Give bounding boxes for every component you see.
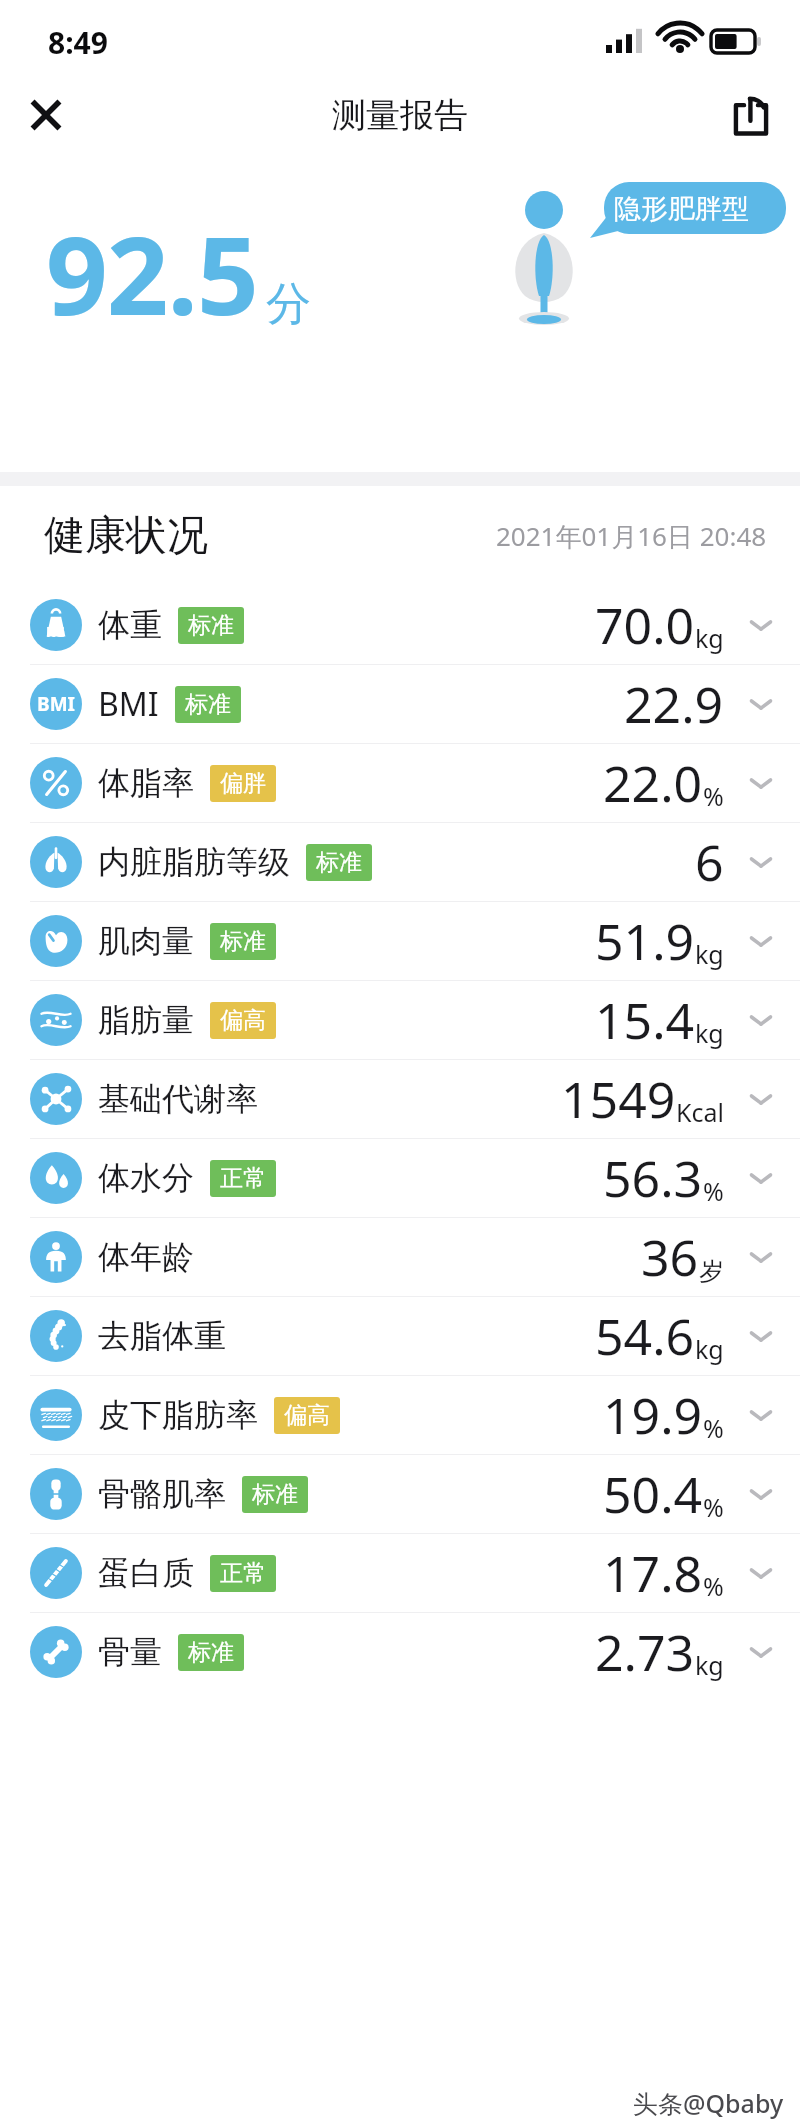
staticText: Kcal	[676, 1095, 724, 1129]
staticText: 22.9	[624, 670, 724, 738]
staticText: 体脂率	[98, 763, 194, 803]
staticText: 偏胖	[220, 769, 266, 798]
staticText: 皮下脂肪率	[98, 1395, 258, 1435]
staticText: 分	[266, 276, 311, 333]
staticText: 健康状况	[44, 510, 208, 562]
staticText: 偏高	[284, 1401, 330, 1430]
staticText: %	[703, 1174, 724, 1208]
staticText: 蛋白质	[98, 1553, 194, 1593]
button[interactable]: 蛋白质	[0, 1534, 800, 1612]
staticText: 基础代谢率	[98, 1079, 258, 1119]
staticText: 51.9	[595, 907, 695, 975]
staticText: 50.4	[603, 1460, 703, 1528]
button[interactable]: 内脏脂肪等级	[0, 823, 800, 901]
staticText: 体年龄	[98, 1237, 194, 1277]
staticText: 2021年01月16日 20:48	[496, 518, 767, 554]
staticText: 标准	[185, 690, 231, 719]
staticText: 脂肪量	[98, 1000, 194, 1040]
button[interactable]: KG	[0, 586, 800, 664]
button[interactable]: 体水分	[0, 1139, 800, 1217]
staticText: 骨量	[98, 1632, 162, 1672]
staticText: kg	[695, 1016, 724, 1050]
staticText: 19.9	[603, 1381, 703, 1449]
staticText: kg	[695, 621, 724, 655]
staticText: 头条@Qbaby	[633, 2086, 784, 2120]
staticText: BMI	[98, 682, 159, 726]
staticText: %	[703, 1569, 724, 1603]
staticText: kg	[695, 937, 724, 971]
staticText: 17.8	[603, 1539, 703, 1607]
staticText: 标准	[220, 927, 266, 956]
staticText: 标准	[188, 611, 234, 640]
staticText: 隐形肥胖型	[614, 192, 749, 226]
staticText: 56.3	[603, 1144, 703, 1212]
staticText: kg	[695, 1332, 724, 1366]
button[interactable]: Close	[14, 83, 78, 147]
staticText: 正常	[220, 1164, 266, 1193]
staticText: 8:49	[48, 22, 108, 63]
staticText: 标准	[252, 1480, 298, 1509]
button[interactable]: 体年龄	[0, 1218, 800, 1296]
staticText: KG	[46, 622, 66, 641]
staticText: 15.4	[595, 986, 695, 1054]
button[interactable]: 骨量	[0, 1613, 800, 1691]
staticText: 2.73	[595, 1618, 695, 1686]
staticText: 内脏脂肪等级	[98, 842, 290, 882]
staticText: 标准	[188, 1638, 234, 1667]
button[interactable]: 肌肉量	[0, 902, 800, 980]
staticText: BMI	[37, 691, 75, 717]
staticText: %	[703, 1490, 724, 1524]
staticText: 岁	[699, 1256, 724, 1287]
staticText: 6	[695, 828, 724, 896]
button[interactable]: BMI	[0, 665, 800, 743]
staticText: 正常	[220, 1559, 266, 1588]
button[interactable]: 去脂体重	[0, 1297, 800, 1375]
staticText: 测量报告	[332, 94, 468, 137]
staticText: 1549	[561, 1065, 676, 1133]
staticText: 22.0	[603, 749, 703, 817]
staticText: 标准	[316, 848, 362, 877]
staticText: 70.0	[595, 591, 695, 659]
staticText: kg	[695, 1648, 724, 1682]
staticText: 肌肉量	[98, 921, 194, 961]
staticText: 体水分	[98, 1158, 194, 1198]
staticText: 54.6	[595, 1302, 695, 1370]
staticText: %	[703, 1411, 724, 1445]
staticText: 骨骼肌率	[98, 1474, 226, 1514]
button[interactable]: 基础代谢率	[0, 1060, 800, 1138]
staticText: %	[703, 779, 724, 813]
staticText: 去脂体重	[98, 1316, 226, 1356]
button[interactable]: Share	[722, 86, 780, 144]
button[interactable]: 体脂率	[0, 744, 800, 822]
staticText: 偏高	[220, 1006, 266, 1035]
staticText: 体重	[98, 605, 162, 645]
staticText: 92.5	[46, 200, 258, 347]
button[interactable]: 骨骼肌率	[0, 1455, 800, 1533]
button[interactable]: 脂肪量	[0, 981, 800, 1059]
button[interactable]: 皮下脂肪率	[0, 1376, 800, 1454]
staticText: 36	[641, 1223, 699, 1291]
